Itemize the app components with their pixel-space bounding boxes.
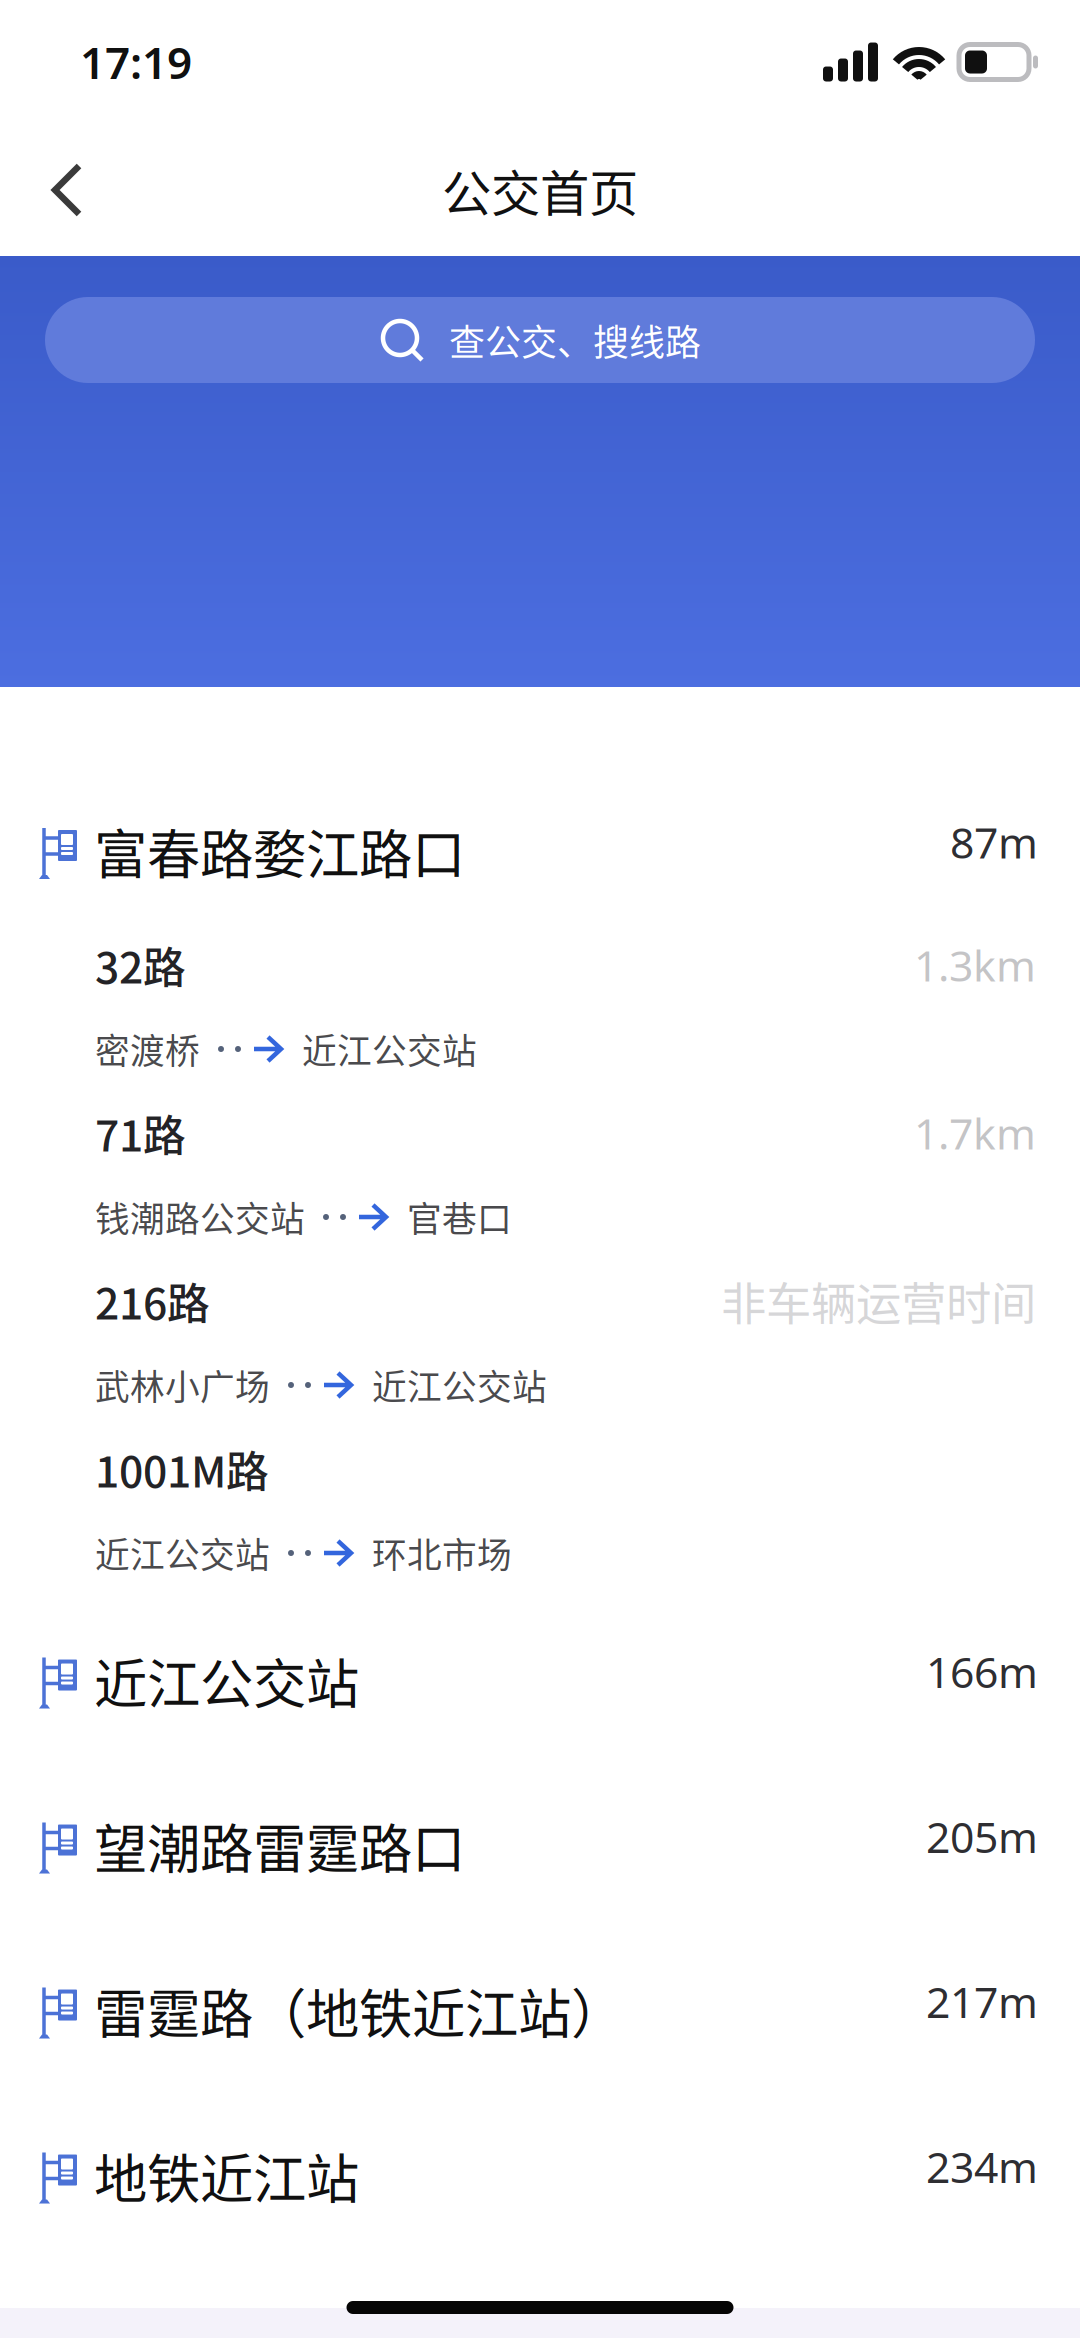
staticText: 密渡桥 <box>95 1024 200 1074</box>
staticText: 近江公交站 <box>95 1528 270 1578</box>
button[interactable]: Back <box>12 135 122 245</box>
staticText: 武林小广场 <box>95 1360 270 1410</box>
staticText: 望潮路雷霆路口 <box>94 1807 465 1884</box>
staticText: 1.3km <box>914 937 1036 993</box>
staticText: 非车辆运营时间 <box>721 1268 1036 1334</box>
button[interactable]: 1001M路 <box>0 1428 1080 1596</box>
staticText: 环北市场 <box>372 1528 512 1578</box>
staticText: 32路 <box>95 934 186 996</box>
staticText: 216路 <box>95 1270 210 1332</box>
staticText: 近江公交站 <box>302 1024 477 1074</box>
staticText: 166m <box>926 1643 1038 1700</box>
staticText: 钱潮路公交站 <box>95 1192 305 1242</box>
button[interactable]: 32路 <box>0 924 1080 1092</box>
button[interactable]: 地铁近江站 <box>0 2093 1080 2258</box>
button[interactable]: 望潮路雷霆路口 <box>0 1763 1080 1928</box>
staticText: 71路 <box>95 1102 186 1164</box>
staticText: 雷霆路（地铁近江站） <box>94 1972 624 2049</box>
staticText: 官巷口 <box>407 1192 512 1242</box>
button[interactable]: 雷霆路（地铁近江站） <box>0 1928 1080 2093</box>
staticText: 近江公交站 <box>94 1642 359 1719</box>
staticText: 查公交、搜线路 <box>449 314 701 366</box>
staticText: 87m <box>950 814 1038 870</box>
button[interactable]: 71路 <box>0 1092 1080 1260</box>
staticText: 234m <box>926 2138 1038 2195</box>
button[interactable]: 富春路婺江路口 <box>0 778 1080 924</box>
staticText: 富春路婺江路口 <box>94 812 465 890</box>
staticText: 205m <box>926 1808 1038 1865</box>
button[interactable]: 216路 <box>0 1260 1080 1428</box>
staticText: 17:19 <box>80 33 192 91</box>
staticText: 公交首页 <box>442 154 638 226</box>
button[interactable]: 近江公交站 <box>0 1598 1080 1763</box>
staticText: 217m <box>926 1973 1038 2030</box>
staticText: 地铁近江站 <box>94 2137 359 2214</box>
staticText: 1.7km <box>914 1105 1036 1161</box>
staticText: 1001M路 <box>95 1438 269 1500</box>
staticText: 近江公交站 <box>372 1360 547 1410</box>
button[interactable]: 查公交、搜线路 <box>0 297 1080 383</box>
